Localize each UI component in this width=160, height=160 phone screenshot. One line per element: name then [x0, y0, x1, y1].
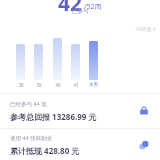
button[interactable] — [89, 41, 98, 80]
staticText: 40 — [55, 82, 61, 88]
button[interactable] — [71, 44, 80, 80]
staticText: 已参与 — [72, 8, 89, 15]
staticText: 参考总回报 13286.99 元 — [10, 111, 97, 122]
staticText: 38 — [18, 82, 24, 88]
button[interactable] — [53, 38, 62, 80]
staticText: 39 — [36, 82, 42, 88]
button[interactable] — [16, 44, 25, 80]
staticText: 已经参与 44 笔 — [10, 100, 47, 108]
staticText: 累计抵现 428.80 元 — [10, 145, 80, 156]
staticText: 本周 — [89, 82, 98, 88]
button[interactable] — [34, 44, 43, 80]
button[interactable]: 回报明细 — [136, 103, 152, 119]
staticText: 1000股 ¥ — [135, 26, 156, 33]
staticText: 使用 44 张鼓励金 — [10, 134, 53, 142]
button[interactable]: 已经参与 44 笔 — [0, 94, 160, 128]
staticText: 42 — [58, 0, 83, 13]
button[interactable]: 使用 44 张鼓励金 — [0, 129, 160, 160]
staticText: 41 — [73, 82, 79, 88]
button[interactable]: 鼓励金明细 — [136, 137, 152, 153]
staticText: /52周 — [84, 2, 102, 12]
